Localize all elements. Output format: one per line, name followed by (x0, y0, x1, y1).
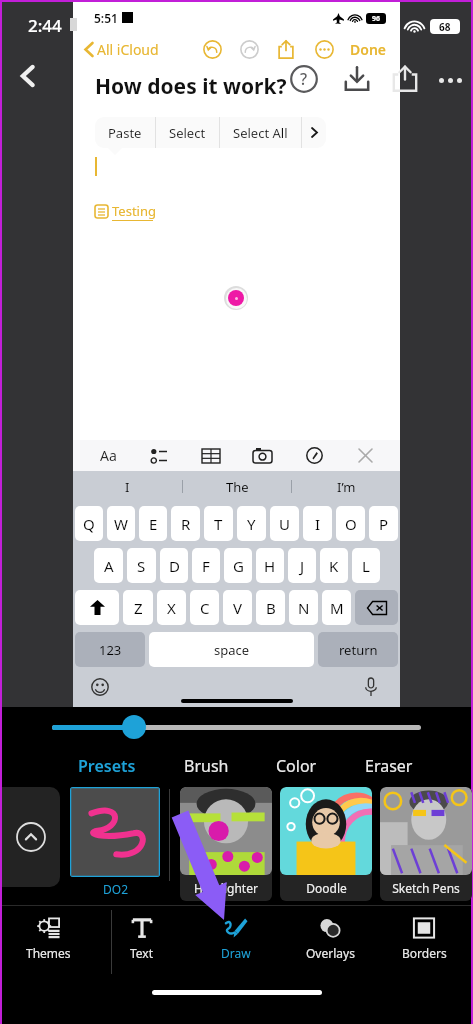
button[interactable]: return (318, 632, 398, 667)
staticText: D (169, 556, 180, 576)
button[interactable]: DO2 (70, 787, 160, 897)
button[interactable]: Dictation (358, 674, 384, 700)
button[interactable]: More options (430, 60, 470, 100)
button[interactable]: S (127, 548, 156, 583)
button[interactable]: A (94, 548, 123, 583)
staticText: H (264, 556, 276, 576)
button[interactable]: X (157, 590, 186, 625)
button[interactable]: Brush size slider (2, 707, 471, 747)
button[interactable]: Redo (236, 36, 262, 62)
button[interactable]: E (139, 506, 167, 541)
button[interactable]: T (204, 506, 233, 541)
staticText: V (233, 598, 243, 618)
button[interactable]: Sketch Pens (380, 787, 472, 901)
staticText: R (181, 514, 191, 534)
button[interactable]: Share (386, 60, 424, 98)
button[interactable]: 123 (75, 632, 145, 667)
button[interactable]: D (160, 548, 188, 583)
button[interactable]: Markup (297, 440, 331, 471)
button[interactable]: More actions (302, 117, 326, 148)
staticText: M (330, 598, 344, 618)
button[interactable]: Borders (377, 916, 471, 961)
button[interactable]: G (224, 548, 252, 583)
button[interactable]: Backspace (355, 590, 398, 625)
button[interactable]: Testing (95, 202, 156, 221)
button[interactable]: Emoji (87, 674, 113, 700)
button[interactable]: F (192, 548, 220, 583)
button[interactable]: Select All (233, 117, 288, 148)
button[interactable]: Text (95, 916, 189, 961)
staticText: Highlighter (194, 880, 258, 896)
button[interactable]: Undo (199, 36, 225, 62)
button[interactable]: I (73, 471, 182, 502)
button[interactable]: Select (169, 117, 206, 148)
staticText: U (279, 514, 290, 534)
staticText: Eraser (365, 755, 413, 777)
button[interactable]: O (336, 506, 365, 541)
button[interactable]: Help (287, 62, 321, 96)
button[interactable]: I (303, 506, 332, 541)
staticText: Z (134, 598, 143, 618)
staticText: 123 (99, 641, 122, 659)
button[interactable]: Z (123, 590, 153, 625)
button[interactable]: Table (194, 440, 228, 471)
button[interactable]: Doodle (280, 787, 372, 901)
staticText: G (233, 556, 244, 576)
button[interactable]: M (322, 590, 351, 625)
staticText: P (379, 514, 389, 534)
button[interactable]: B (256, 590, 285, 625)
button[interactable]: Camera (245, 440, 279, 471)
staticText: Testing (112, 202, 156, 220)
staticText: I’m (337, 478, 356, 496)
button[interactable]: Checklist (142, 440, 176, 471)
button[interactable]: Draw (189, 916, 283, 961)
button[interactable]: Y (237, 506, 266, 541)
button[interactable]: Aa (91, 440, 125, 471)
button[interactable]: Q (75, 506, 103, 541)
button[interactable]: R (171, 506, 200, 541)
button[interactable]: V (223, 590, 252, 625)
button[interactable]: Highlighter (180, 787, 272, 901)
staticText: J (300, 556, 305, 576)
button[interactable]: Overlays (283, 916, 377, 961)
button[interactable]: All iCloud (84, 40, 159, 59)
staticText: ? (300, 68, 308, 90)
staticText: Q (83, 514, 95, 534)
button[interactable]: H (256, 548, 284, 583)
button[interactable]: Share note (273, 36, 299, 62)
button[interactable]: P (369, 506, 398, 541)
button[interactable]: J (288, 548, 316, 583)
button[interactable]: N (289, 590, 318, 625)
button[interactable]: space (149, 632, 314, 667)
button[interactable]: Paste (108, 117, 142, 148)
button[interactable]: The (183, 471, 291, 502)
button[interactable]: Color (276, 755, 317, 777)
button[interactable]: Back (6, 54, 50, 98)
staticText: L (362, 556, 370, 576)
button[interactable]: Collapse (2, 787, 60, 887)
button[interactable]: L (352, 548, 380, 583)
button[interactable]: K (320, 548, 348, 583)
button[interactable]: Themes (2, 916, 95, 961)
button[interactable]: C (190, 590, 219, 625)
button[interactable]: Done (350, 40, 387, 59)
staticText: Presets (78, 755, 136, 777)
staticText: Brush (184, 755, 229, 777)
button[interactable]: Download (338, 60, 376, 98)
staticText: space (214, 641, 250, 659)
button[interactable]: I’m (292, 471, 400, 502)
button[interactable]: U (270, 506, 299, 541)
staticText: Y (247, 514, 256, 534)
staticText: Select All (233, 124, 288, 142)
button[interactable]: Presets (78, 755, 136, 777)
button[interactable]: More (311, 36, 337, 62)
button[interactable]: Eraser (365, 755, 413, 777)
staticText: Paste (108, 124, 142, 142)
button[interactable]: Shift (75, 590, 119, 625)
button[interactable]: W (107, 506, 135, 541)
button[interactable]: Close (348, 440, 382, 471)
staticText: I (125, 478, 130, 496)
button[interactable]: Brush (184, 755, 229, 777)
staticText: Text (130, 945, 154, 961)
staticText: 68 (439, 20, 451, 34)
